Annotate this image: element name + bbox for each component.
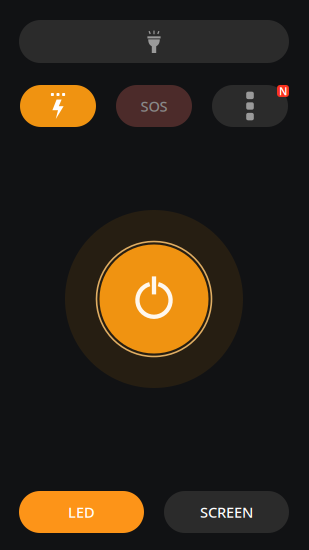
button[interactable]: SCREEN	[164, 491, 289, 533]
staticText: SCREEN	[200, 502, 253, 522]
button[interactable]: More options	[212, 85, 288, 127]
staticText: N	[279, 84, 287, 98]
button[interactable]: Strobe	[20, 85, 96, 127]
button[interactable]: LED	[19, 491, 144, 533]
staticText: SOS	[140, 96, 167, 116]
button[interactable]: SOS	[116, 85, 192, 127]
button[interactable]: Power	[65, 210, 243, 388]
button[interactable]: Flashlight	[19, 20, 289, 63]
staticText: LED	[68, 502, 95, 522]
